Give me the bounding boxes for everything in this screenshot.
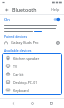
staticText: Help (51, 7, 60, 12)
button[interactable]: Desktop-PC-01 (2, 78, 62, 86)
button[interactable]: On (0, 15, 64, 24)
staticText: Paired devices (4, 34, 28, 39)
button[interactable]: Keyboard (2, 86, 62, 94)
other: Bluetooth toggle (53, 17, 60, 22)
button[interactable]: Home (26, 99, 38, 108)
button[interactable]: Help (50, 6, 61, 13)
staticText: Bluetooth (12, 6, 37, 13)
staticText: Car kit (13, 72, 24, 77)
staticText: Galaxy Buds Pro (11, 40, 39, 45)
staticText: Keyboard (13, 88, 29, 93)
button[interactable]: Galaxy Buds Pro (0, 39, 64, 46)
button[interactable]: TV (2, 62, 62, 70)
button[interactable]: Kitchen speaker (2, 54, 62, 62)
button[interactable]: Device settings (55, 40, 60, 45)
button[interactable] (34, 31, 42, 32)
staticText: Available devices (4, 48, 32, 53)
staticText: TV (13, 64, 18, 69)
button[interactable]: Back (7, 99, 19, 108)
button[interactable]: Back (3, 6, 10, 13)
button[interactable]: Car kit (2, 70, 62, 78)
staticText: On (4, 17, 10, 23)
button[interactable]: Recents (45, 99, 57, 108)
staticText: Kitchen speaker (13, 56, 40, 61)
staticText: Desktop-PC-01 (13, 80, 38, 85)
